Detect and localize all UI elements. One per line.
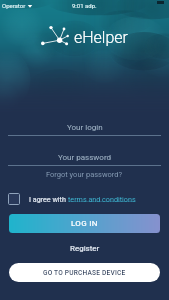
button[interactable]: LOG IN [9,214,160,233]
staticText: GO TO PURCHASE DEVICE [43,269,126,277]
staticText: I agree with [29,195,68,203]
staticText: Register [70,244,100,253]
button[interactable]: I agree with [8,192,169,206]
button[interactable]: Your password [8,149,161,166]
staticText: Operator [2,2,26,9]
button[interactable]: Forgot your password? [0,168,169,180]
button[interactable]: Register [0,241,169,256]
staticText: terms and conditions [68,195,136,203]
staticText: Forgot your password? [46,170,123,179]
staticText: LOG IN [71,219,98,228]
staticText: Your login [67,123,103,132]
button[interactable]: GO TO PURCHASE DEVICE [9,263,160,282]
staticText: eHelper [74,28,128,47]
staticText: 9:01 adp. [72,2,97,9]
staticText: Your password [58,153,112,162]
button[interactable]: Your login [8,119,161,136]
